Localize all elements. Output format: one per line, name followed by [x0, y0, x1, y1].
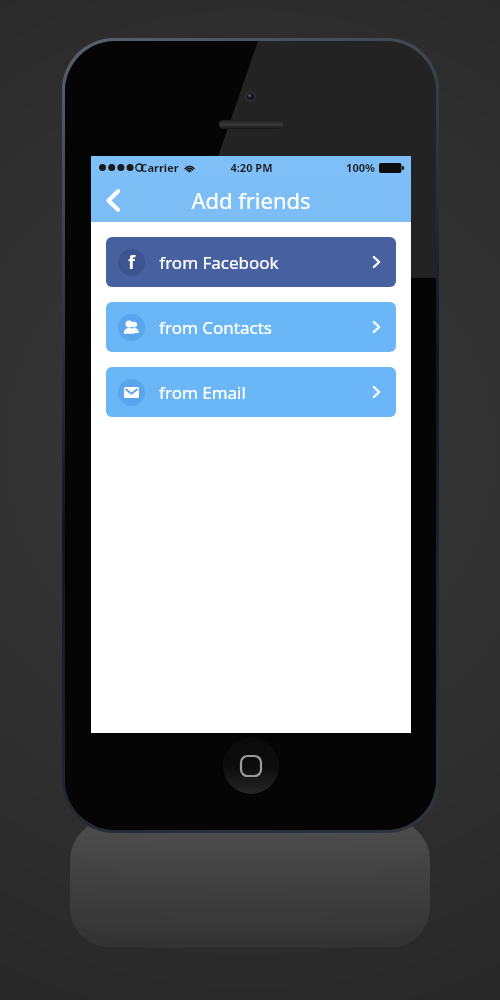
staticText: 100% — [346, 160, 375, 175]
staticText: from Facebook — [159, 251, 279, 274]
button[interactable]: f — [106, 237, 396, 287]
staticText: from Email — [159, 381, 246, 404]
staticText: Add friends — [191, 185, 311, 215]
button[interactable]: from Email — [106, 367, 396, 417]
button[interactable]: Home — [223, 738, 279, 794]
staticText: from Contacts — [159, 316, 272, 339]
staticText: 4:20 PM — [230, 160, 273, 175]
button[interactable]: from Contacts — [106, 302, 396, 352]
staticText: f — [128, 251, 135, 274]
staticText: Carrier — [140, 160, 179, 175]
button[interactable]: Back — [91, 178, 135, 222]
